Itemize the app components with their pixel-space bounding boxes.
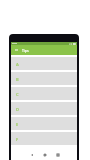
button[interactable]: D — [11, 102, 77, 115]
button[interactable]: Recents — [54, 145, 61, 158]
button[interactable]: Home — [41, 145, 48, 158]
staticText: E — [16, 122, 19, 126]
staticText: C — [16, 92, 19, 96]
staticText: F — [16, 137, 19, 141]
button[interactable]: B — [11, 72, 77, 85]
button[interactable]: Back — [28, 145, 35, 158]
button[interactable]: Menu — [13, 47, 19, 53]
staticText: Tips — [22, 48, 29, 53]
staticText: D — [16, 107, 19, 111]
button[interactable]: C — [11, 87, 77, 100]
button[interactable]: A — [11, 57, 77, 70]
button[interactable]: F — [11, 132, 77, 145]
staticText: B — [16, 77, 19, 81]
button[interactable]: E — [11, 117, 77, 130]
staticText: A — [16, 62, 19, 66]
